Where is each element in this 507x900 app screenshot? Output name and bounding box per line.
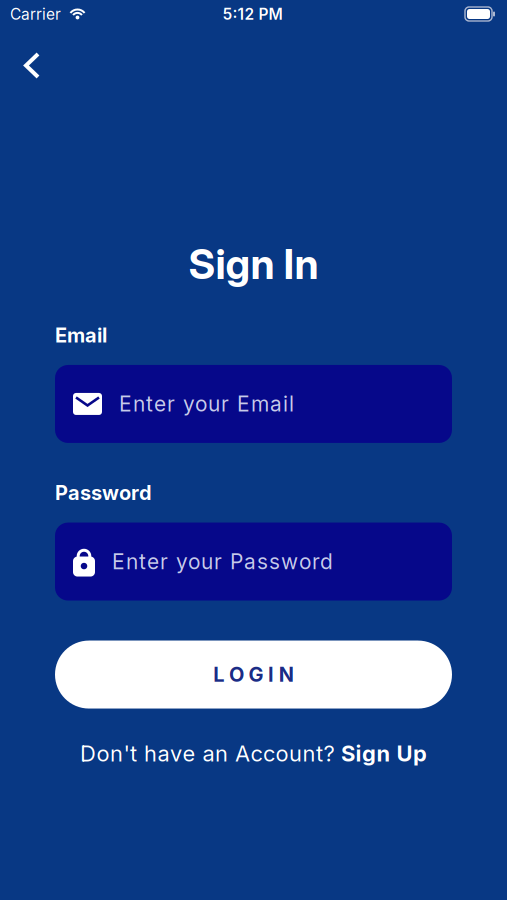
- button[interactable]: Enter your Password: [55, 523, 452, 601]
- staticText: Enter your Email: [119, 392, 294, 416]
- staticText: Carrier: [10, 5, 61, 23]
- staticText: LOGIN: [213, 663, 294, 686]
- button[interactable]: LOGIN: [55, 641, 452, 709]
- button[interactable]: Enter your Email: [55, 365, 452, 443]
- staticText: Sign In: [188, 240, 318, 288]
- staticText: Password: [55, 481, 152, 505]
- staticText: Sign Up: [341, 741, 427, 767]
- staticText: 5:12 PM: [222, 5, 282, 23]
- button[interactable]: Back: [0, 28, 40, 79]
- button[interactable]: Sign Up: [341, 741, 427, 767]
- staticText: Don't have an Account?: [80, 741, 341, 767]
- staticText: Email: [55, 323, 107, 347]
- staticText: Enter your Password: [112, 549, 333, 574]
